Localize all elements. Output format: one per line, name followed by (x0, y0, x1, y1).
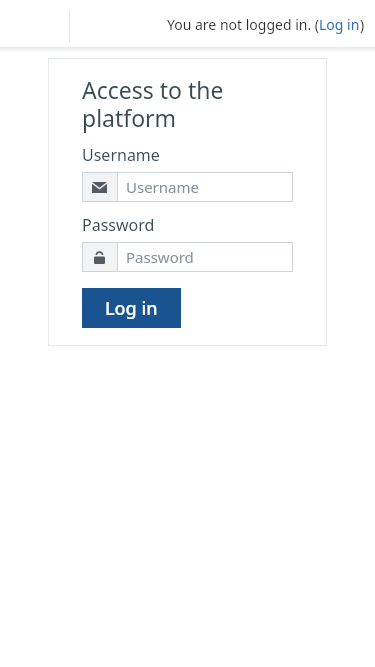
button[interactable]: Log in (82, 288, 181, 328)
button[interactable]: Password (82, 242, 293, 272)
staticText: Log in (105, 296, 158, 321)
staticText: Username (126, 177, 199, 197)
other: Password (94, 251, 105, 264)
other: Username (92, 182, 107, 193)
staticText: Log in (319, 15, 360, 34)
staticText: Access to the platform (82, 74, 254, 134)
staticText: Username (82, 144, 160, 166)
staticText: ) (360, 15, 365, 34)
staticText: Password (82, 214, 155, 236)
staticText: You are not logged in. ( (167, 15, 319, 34)
button[interactable]: Log in (319, 15, 360, 34)
button[interactable]: Username (82, 172, 293, 202)
staticText: Password (126, 247, 194, 267)
